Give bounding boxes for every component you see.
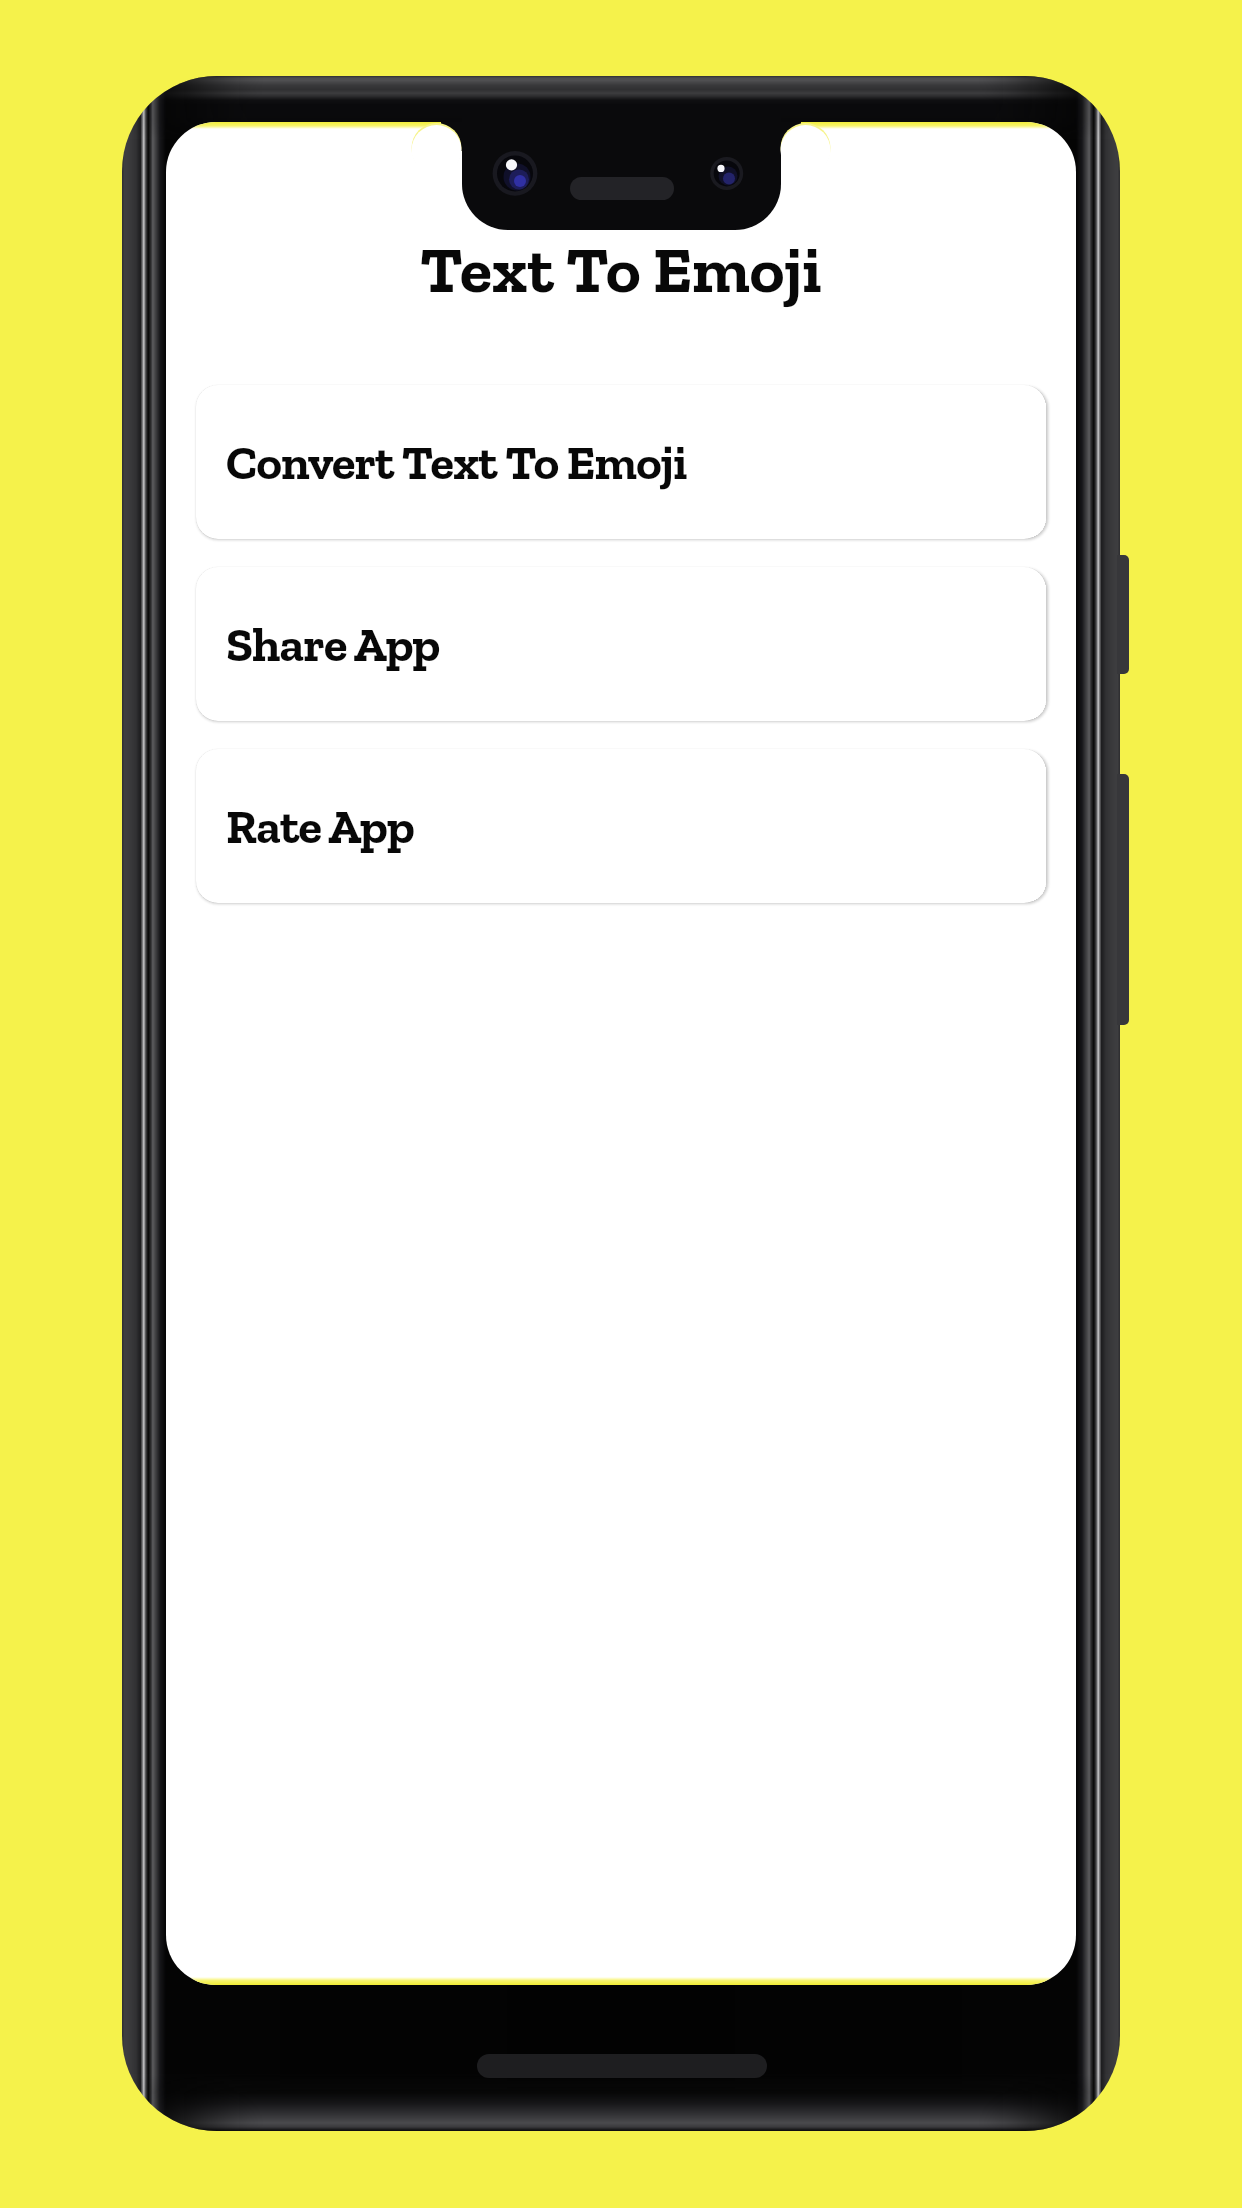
staticText: Text To Emoji [420,230,822,309]
staticText: Rate App [226,797,414,855]
button[interactable]: Rate App [196,749,1046,903]
button[interactable]: Convert Text To Emoji [196,385,1046,539]
staticText: Share App [226,615,440,673]
staticText: Convert Text To Emoji [226,433,687,491]
button[interactable]: Share App [196,567,1046,721]
